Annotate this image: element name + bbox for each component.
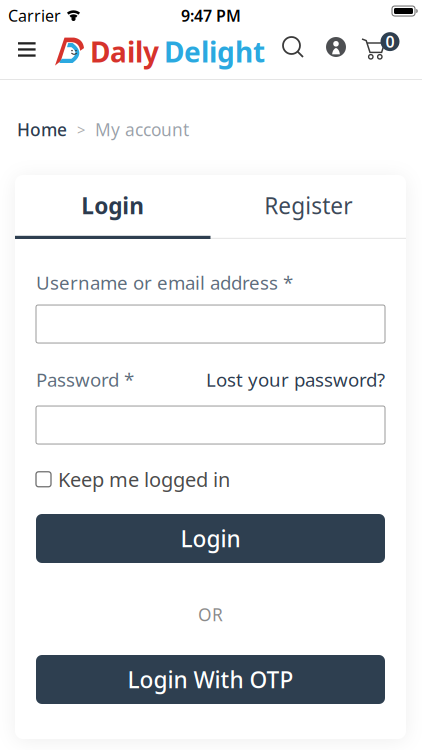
button[interactable]: Daily Delight home — [55, 33, 265, 70]
staticText: Keep me logged in — [58, 466, 230, 493]
button[interactable]: Keep me logged in — [36, 466, 230, 493]
staticText: Login With OTP — [127, 664, 293, 694]
button[interactable]: Lost your password? — [206, 367, 385, 392]
button[interactable]: Search — [277, 31, 310, 64]
staticText: Login — [81, 190, 144, 220]
staticText: My account — [95, 118, 189, 141]
staticText: Username or email address * — [36, 270, 293, 295]
button[interactable]: Home — [17, 118, 67, 141]
staticText: 0 — [385, 31, 394, 52]
button[interactable]: Login — [36, 514, 385, 563]
staticText: Carrier — [8, 5, 61, 26]
staticText: Delight — [164, 33, 265, 70]
staticText: 9:47 PM — [181, 5, 241, 26]
button[interactable]: Login — [15, 175, 210, 236]
button[interactable]: Register — [210, 175, 406, 236]
staticText: > — [77, 120, 85, 139]
button[interactable]: My account — [320, 31, 352, 63]
staticText: Register — [264, 190, 352, 220]
staticText: Lost your password? — [206, 367, 385, 392]
staticText: Daily — [90, 33, 159, 70]
staticText: Login — [180, 523, 240, 553]
button[interactable]: Login With OTP — [36, 655, 385, 704]
button[interactable]: Menu — [10, 33, 44, 65]
staticText: Home — [17, 118, 67, 141]
staticText: OR — [198, 603, 223, 626]
button[interactable]: Cart, 0 items — [362, 31, 399, 62]
staticText: Password * — [36, 367, 134, 392]
